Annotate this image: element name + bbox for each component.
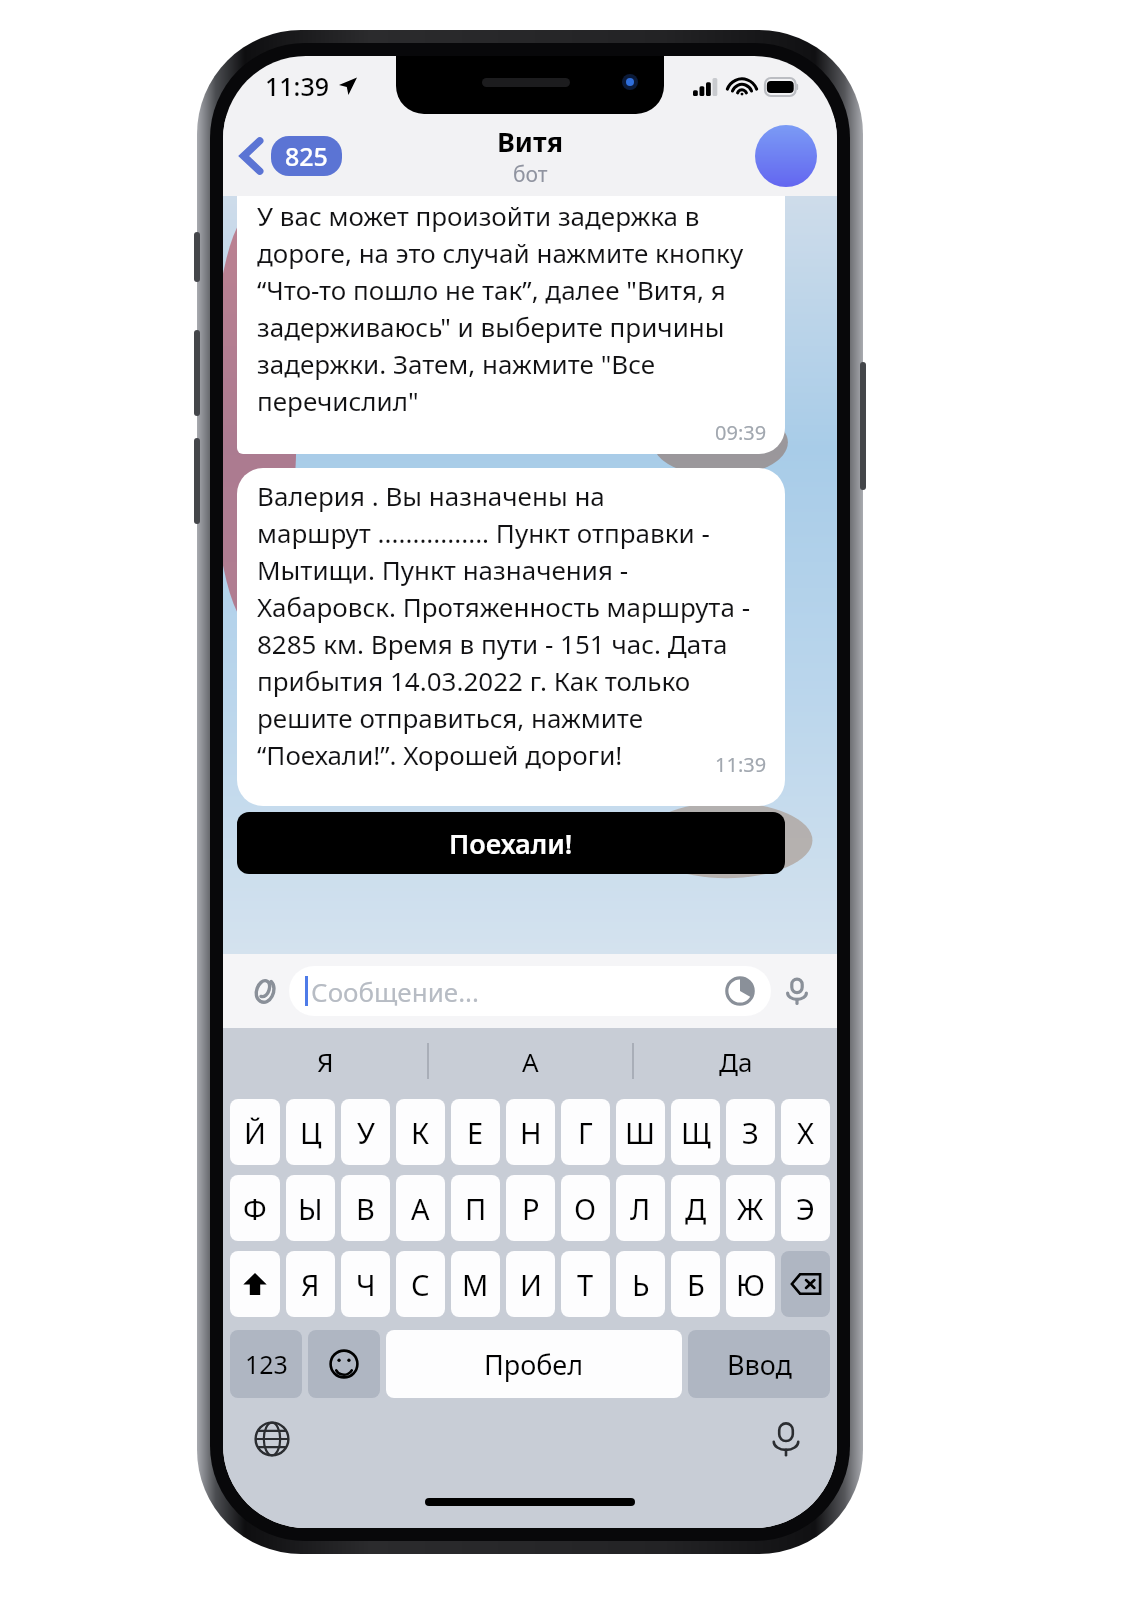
button[interactable]: Backspace xyxy=(781,1251,830,1317)
staticText: Н xyxy=(520,1113,542,1152)
button[interactable]: Э xyxy=(781,1175,830,1241)
button[interactable]: У xyxy=(341,1099,390,1165)
button[interactable]: Ю xyxy=(726,1251,775,1317)
staticText: В xyxy=(356,1189,375,1228)
staticText: Поехали! xyxy=(449,825,573,862)
staticText: Л xyxy=(630,1189,651,1228)
button[interactable]: Ф xyxy=(230,1175,280,1241)
staticText: С xyxy=(411,1265,430,1304)
button[interactable]: 825 xyxy=(241,136,342,176)
button[interactable]: Dictate xyxy=(763,1416,809,1462)
staticText: бот xyxy=(513,160,548,189)
staticText: У xyxy=(357,1113,375,1152)
button[interactable]: Ч xyxy=(341,1251,390,1317)
staticText: О xyxy=(574,1189,597,1228)
button[interactable]: Р xyxy=(506,1175,555,1241)
button[interactable]: Profile xyxy=(755,125,817,187)
staticText: Ц xyxy=(300,1113,322,1152)
staticText: Р xyxy=(522,1189,540,1228)
button[interactable]: Change keyboard language xyxy=(249,1416,295,1462)
button[interactable]: Emoji xyxy=(308,1330,380,1398)
button[interactable]: Пробел xyxy=(386,1330,682,1398)
button[interactable]: А xyxy=(396,1175,445,1241)
button[interactable]: Ш xyxy=(616,1099,665,1165)
staticText: И xyxy=(520,1265,542,1304)
button[interactable]: Валерия . Вы назначены на маршрут ......… xyxy=(257,478,767,800)
button[interactable]: Б xyxy=(671,1251,720,1317)
staticText: Г xyxy=(578,1113,593,1152)
button[interactable]: Я xyxy=(223,1028,427,1094)
button[interactable]: Е xyxy=(451,1099,500,1165)
button[interactable]: С xyxy=(396,1251,445,1317)
staticText: Ш xyxy=(625,1113,656,1152)
button[interactable]: И xyxy=(506,1251,555,1317)
staticText: К xyxy=(411,1113,430,1152)
staticText: Э xyxy=(796,1189,815,1228)
button[interactable]: Г xyxy=(561,1099,610,1165)
button[interactable]: К xyxy=(396,1099,445,1165)
button[interactable]: З xyxy=(726,1099,775,1165)
staticText: 825 xyxy=(285,139,328,173)
button[interactable]: Voice message xyxy=(771,965,823,1017)
staticText: 09:39 xyxy=(715,419,767,446)
staticText: У вас может произойти задержка в дороге,… xyxy=(257,198,767,419)
staticText: Е xyxy=(467,1113,484,1152)
button[interactable]: 123 xyxy=(230,1330,302,1398)
button[interactable]: М xyxy=(451,1251,500,1317)
staticText: 11:39 xyxy=(265,69,330,103)
staticText: Пробел xyxy=(484,1346,584,1383)
staticText: Да xyxy=(719,1044,753,1079)
staticText: Д xyxy=(685,1189,707,1228)
button[interactable]: Т xyxy=(561,1251,610,1317)
button[interactable]: Ж xyxy=(726,1175,775,1241)
button[interactable]: Ы xyxy=(286,1175,335,1241)
button[interactable]: А xyxy=(429,1028,632,1094)
staticText: Ввод xyxy=(727,1346,792,1383)
staticText: Т xyxy=(577,1265,594,1304)
staticText: Валерия . Вы назначены на маршрут ......… xyxy=(257,478,767,773)
button[interactable]: Ц xyxy=(286,1099,335,1165)
button[interactable]: Щ xyxy=(671,1099,720,1165)
staticText: Ю xyxy=(736,1265,765,1304)
staticText: Б xyxy=(687,1265,705,1304)
staticText: Ь xyxy=(632,1265,650,1304)
button[interactable]: Й xyxy=(230,1099,280,1165)
button[interactable]: Х xyxy=(781,1099,830,1165)
staticText: А xyxy=(522,1044,539,1079)
button[interactable]: В xyxy=(341,1175,390,1241)
button[interactable]: Д xyxy=(671,1175,720,1241)
staticText: З xyxy=(742,1113,759,1152)
staticText: Ы xyxy=(298,1189,323,1228)
button[interactable]: Attach xyxy=(237,965,289,1017)
staticText: Витя xyxy=(497,123,564,160)
staticText: Я xyxy=(301,1265,320,1304)
staticText: Ч xyxy=(356,1265,376,1304)
button[interactable]: Сообщение... xyxy=(289,966,771,1016)
staticText: 11:39 xyxy=(715,751,767,778)
button[interactable]: О xyxy=(561,1175,610,1241)
button[interactable]: Ввод xyxy=(688,1330,830,1398)
staticText: Ж xyxy=(737,1189,764,1228)
button[interactable]: Л xyxy=(616,1175,665,1241)
staticText: 123 xyxy=(245,1347,288,1381)
button[interactable]: Н xyxy=(506,1099,555,1165)
staticText: Я xyxy=(317,1044,334,1079)
staticText: Х xyxy=(797,1113,815,1152)
staticText: П xyxy=(465,1189,487,1228)
staticText: Сообщение... xyxy=(311,974,480,1009)
button[interactable]: У вас может произойти задержка в дороге,… xyxy=(257,198,767,446)
button[interactable]: Поехали! xyxy=(237,812,785,874)
button[interactable]: Я xyxy=(286,1251,335,1317)
staticText: Й xyxy=(244,1113,266,1152)
staticText: М xyxy=(462,1265,489,1304)
staticText: Ф xyxy=(243,1189,267,1228)
button[interactable]: Ь xyxy=(616,1251,665,1317)
button[interactable]: Да xyxy=(634,1028,837,1094)
staticText: А xyxy=(411,1189,430,1228)
staticText: Щ xyxy=(681,1113,711,1152)
button[interactable]: П xyxy=(451,1175,500,1241)
button[interactable]: Shift xyxy=(230,1251,280,1317)
